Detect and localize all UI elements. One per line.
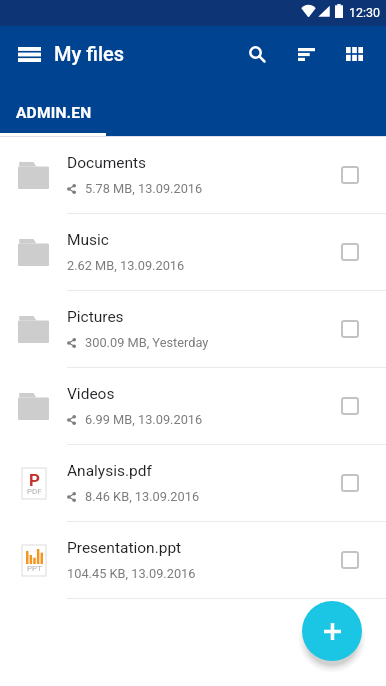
button[interactable]: Select Documents [313, 137, 386, 213]
staticText: PPT [27, 564, 42, 573]
button[interactable]: Music [0, 214, 386, 291]
staticText: My files [54, 42, 125, 65]
staticText: 8.46 KB, 13.09.2016 [85, 489, 200, 504]
button[interactable]: Open navigation drawer [5, 30, 53, 78]
staticText: ADMIN.EN [16, 104, 92, 122]
button[interactable]: Search [233, 30, 281, 78]
button[interactable]: Sort [282, 30, 330, 78]
staticText: 6.99 MB, 13.09.2016 [85, 412, 203, 427]
staticText: 104.45 KB, 13.09.2016 [67, 566, 196, 581]
button[interactable]: Select Pictures [313, 291, 386, 367]
staticText: 2.62 MB, 13.09.2016 [67, 258, 185, 273]
button[interactable]: P [0, 445, 386, 522]
button[interactable]: Add [302, 601, 362, 661]
button[interactable]: Pictures [0, 291, 386, 368]
button[interactable]: Switch to grid view [330, 30, 378, 78]
staticText: Presentation.ppt [67, 539, 182, 557]
button[interactable]: PPT [0, 522, 386, 599]
staticText: Analysis.pdf [67, 462, 152, 480]
staticText: PDF [27, 487, 42, 496]
button[interactable]: Videos [0, 368, 386, 445]
button[interactable]: Select Presentation.ppt [313, 522, 386, 598]
button[interactable]: ADMIN.EN [0, 82, 106, 136]
staticText: 5.78 MB, 13.09.2016 [85, 181, 203, 196]
staticText: Music [67, 231, 109, 249]
staticText: 300.09 MB, Yesterday [85, 335, 209, 350]
button[interactable]: Select Music [313, 214, 386, 290]
staticText: 12:30 [349, 5, 381, 20]
button[interactable]: Select Analysis.pdf [313, 445, 386, 521]
staticText: P [29, 470, 40, 490]
button[interactable]: Select Videos [313, 368, 386, 444]
staticText: Documents [67, 154, 147, 172]
button[interactable]: Documents [0, 137, 386, 214]
staticText: Pictures [67, 308, 124, 326]
staticText: Videos [67, 385, 115, 403]
